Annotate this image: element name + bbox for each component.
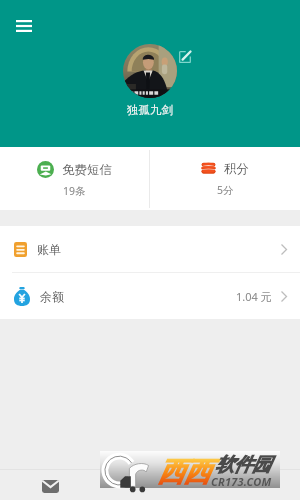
button[interactable]: Menu [8, 10, 40, 42]
staticText: 免费短信 [62, 162, 112, 178]
button[interactable]: 积分 [150, 147, 300, 197]
button[interactable]: Edit profile [174, 46, 196, 68]
staticText: 5分 [217, 183, 234, 197]
staticText: 账单 [37, 242, 61, 257]
staticText: 1.04 元 [236, 289, 272, 304]
button[interactable]: Messages [36, 472, 64, 500]
staticText: 19条 [63, 184, 86, 198]
button[interactable]: Profile photo [123, 44, 177, 98]
staticText: 积分 [224, 161, 249, 177]
button[interactable]: 免费短信 [0, 147, 149, 198]
staticText: 西西 [158, 455, 210, 489]
staticText: 余额 [40, 289, 64, 304]
button[interactable]: Bills [0, 226, 300, 272]
staticText: 独孤九剑 [127, 103, 173, 117]
staticText: 软件园 [215, 453, 271, 477]
button[interactable]: Balance [0, 273, 300, 319]
staticText: CR173.COM [211, 474, 272, 489]
